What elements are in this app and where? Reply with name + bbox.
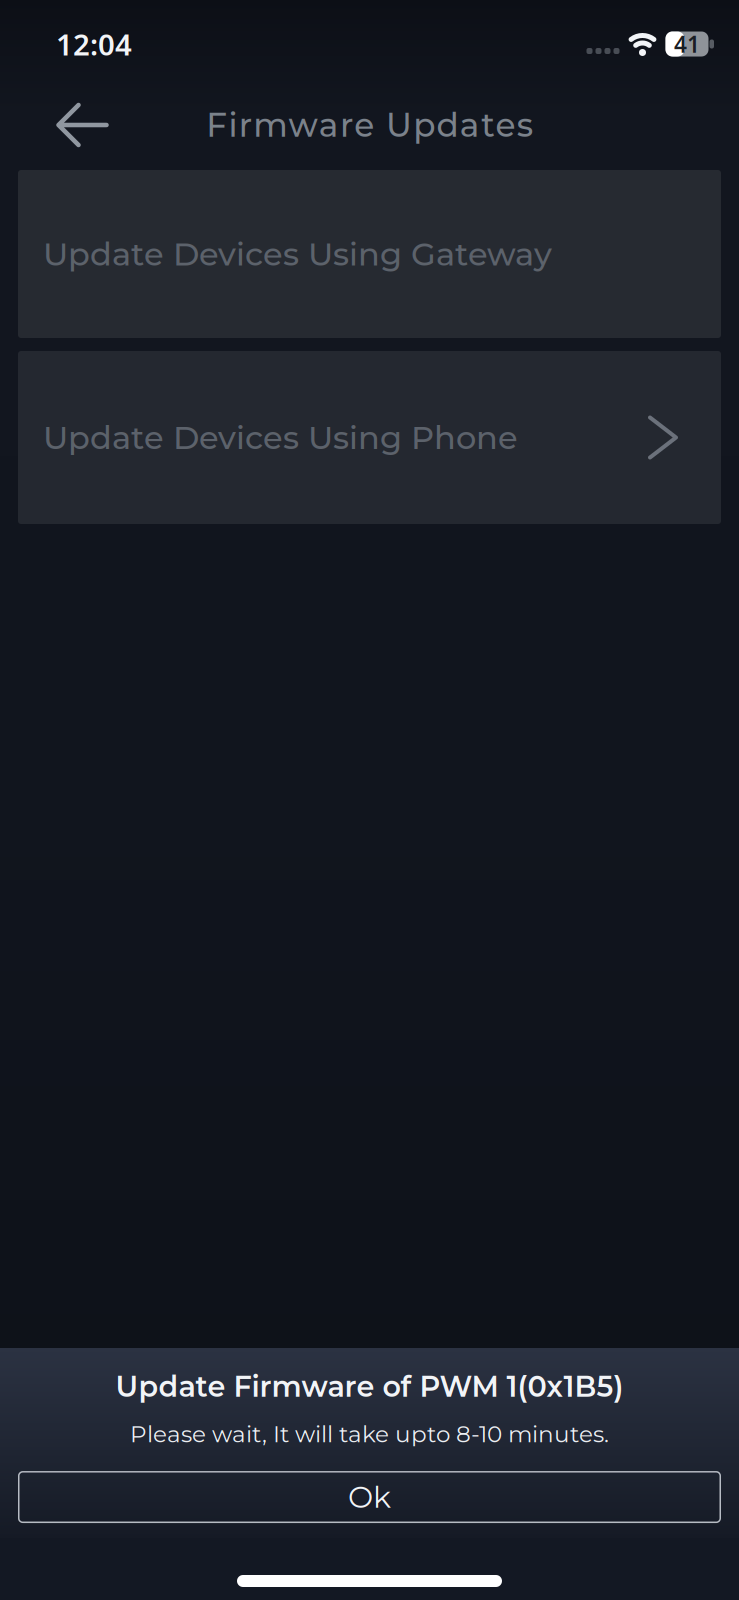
- staticText: Update Devices Using Gateway: [43, 234, 552, 273]
- staticText: Update Devices Using Phone: [43, 418, 518, 457]
- staticText: 41: [674, 29, 700, 59]
- button[interactable]: Back: [0, 90, 109, 160]
- staticText: Ok: [348, 1479, 391, 1515]
- staticText: Firmware Updates: [206, 105, 533, 145]
- staticText: Update Firmware of PWM 1(0x1B5): [115, 1369, 623, 1404]
- button[interactable]: Update Devices Using Gateway: [18, 170, 721, 338]
- button[interactable]: Update Devices Using Phone: [18, 351, 721, 524]
- staticText: 12:04: [56, 24, 132, 63]
- button[interactable]: Ok: [18, 1471, 721, 1523]
- staticText: Please wait, It will take upto 8-10 minu…: [130, 1420, 609, 1448]
